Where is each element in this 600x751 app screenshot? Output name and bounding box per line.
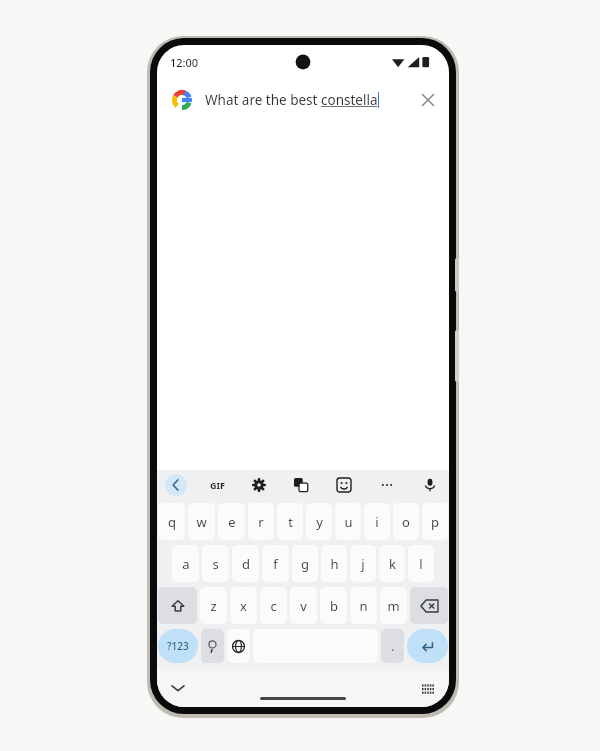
staticText: u [344, 513, 353, 531]
button[interactable]: r [248, 503, 274, 540]
staticText: k [389, 555, 396, 573]
staticText: y [316, 513, 323, 531]
staticText: What are the best [205, 91, 321, 109]
button[interactable]: j [350, 545, 376, 582]
button[interactable]: Shift [158, 587, 197, 624]
button[interactable]: Translate [290, 474, 312, 496]
button[interactable]: x [230, 587, 257, 624]
staticText: q [168, 513, 176, 531]
button[interactable]: Backspace [410, 587, 448, 624]
other: Volume [455, 330, 459, 382]
staticText: l [419, 555, 423, 573]
button[interactable]: t [277, 503, 303, 540]
other: Power [455, 258, 459, 292]
button[interactable]: Settings [248, 474, 270, 496]
button[interactable]: o [393, 503, 419, 540]
staticText: x [240, 597, 247, 615]
button[interactable]: m [380, 587, 407, 624]
staticText: e [228, 513, 236, 531]
button[interactable]: g [292, 545, 318, 582]
button[interactable]: b [320, 587, 347, 624]
staticText: d [242, 555, 250, 573]
staticText: r [258, 513, 264, 531]
button[interactable]: Clear [411, 83, 445, 117]
staticText: f [273, 555, 278, 573]
button[interactable]: GIF [207, 476, 228, 494]
button[interactable]: e [218, 503, 245, 540]
button[interactable]: c [260, 587, 287, 624]
button[interactable]: u [335, 503, 361, 540]
button[interactable]: l [408, 545, 434, 582]
staticText: b [330, 597, 338, 615]
staticText: t [288, 513, 293, 531]
button[interactable]: q [158, 503, 185, 540]
staticText: 12:00 [170, 55, 199, 70]
staticText: a [182, 555, 190, 573]
staticText: n [359, 597, 368, 615]
button[interactable]: More options [376, 474, 398, 496]
staticText: w [196, 513, 207, 531]
button[interactable]: p [422, 503, 448, 540]
staticText: m [387, 597, 400, 615]
staticText: c [270, 597, 277, 615]
button[interactable]: y [306, 503, 332, 540]
staticText: . [391, 637, 395, 655]
button[interactable]: k [379, 545, 405, 582]
staticText: i [375, 513, 379, 531]
button[interactable]: d [232, 545, 259, 582]
staticText: GIF [210, 479, 225, 491]
button[interactable]: Back [165, 474, 187, 496]
button[interactable]: Stickers [333, 474, 355, 496]
button[interactable]: Google [157, 79, 449, 121]
button[interactable]: Hide keyboard [165, 675, 191, 701]
button[interactable]: Voice input [419, 474, 441, 496]
button[interactable]: Enter [407, 629, 448, 663]
button[interactable]: Change language [227, 629, 250, 663]
button[interactable]: n [350, 587, 377, 624]
staticText: g [301, 555, 309, 573]
button[interactable]: Switch keyboard [415, 675, 441, 701]
button[interactable]: i [364, 503, 390, 540]
button[interactable]: w [188, 503, 215, 540]
staticText: v [300, 597, 307, 615]
staticText: ?123 [167, 639, 189, 653]
button[interactable]: a [172, 545, 199, 582]
staticText: constella [321, 91, 378, 109]
button[interactable]: h [321, 545, 347, 582]
staticText: h [330, 555, 339, 573]
other: Google [171, 89, 193, 111]
staticText: o [402, 513, 410, 531]
button[interactable]: v [290, 587, 317, 624]
staticText: z [210, 597, 217, 615]
button[interactable]: f [262, 545, 289, 582]
staticText: p [431, 513, 439, 531]
button[interactable]: ?123 [158, 629, 198, 663]
staticText: s [212, 555, 219, 573]
button[interactable]: . [381, 629, 404, 663]
button[interactable]: s [202, 545, 229, 582]
button[interactable]: Emoji and comma [201, 629, 224, 663]
button[interactable]: z [200, 587, 227, 624]
staticText: j [361, 555, 365, 573]
